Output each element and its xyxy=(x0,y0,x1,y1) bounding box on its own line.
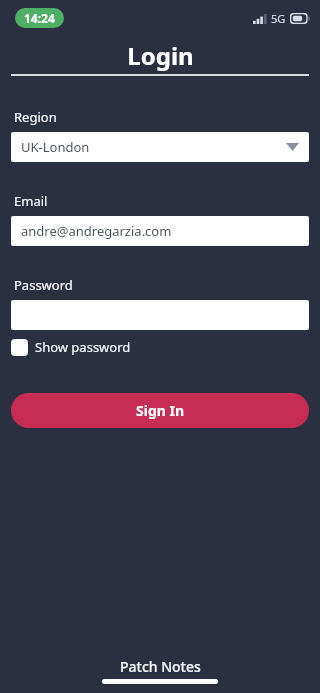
staticText: Email xyxy=(14,192,48,210)
button[interactable]: Patch Notes xyxy=(120,657,201,676)
button[interactable]: Show password xyxy=(11,338,131,356)
staticText: Show password xyxy=(35,338,131,356)
button[interactable]: Sign In xyxy=(11,393,309,428)
staticText: andre@andregarzia.com xyxy=(21,222,172,240)
staticText: UK-London xyxy=(21,138,90,156)
button[interactable]: andre@andregarzia.com xyxy=(11,216,309,246)
staticText: Region xyxy=(14,108,57,126)
button[interactable]: Password field xyxy=(11,300,309,330)
staticText: 5G xyxy=(271,11,286,26)
staticText: Login xyxy=(127,39,194,72)
staticText: Sign In xyxy=(136,401,185,420)
staticText: Password xyxy=(14,276,73,294)
button[interactable]: UK-London xyxy=(11,132,309,162)
staticText: 14:24 xyxy=(24,10,55,26)
